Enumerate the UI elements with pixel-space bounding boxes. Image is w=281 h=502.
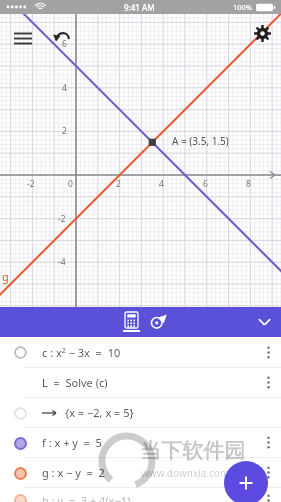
staticText: 2	[62, 125, 67, 137]
button[interactable]: More options	[255, 488, 281, 502]
staticText: 2	[116, 178, 121, 190]
button[interactable]: Calculator	[118, 307, 144, 337]
button[interactable]: Geometry	[145, 307, 171, 337]
staticText: 6	[203, 178, 208, 190]
staticText: 4	[62, 82, 67, 94]
button[interactable]: f : x + y = 5	[0, 428, 281, 457]
staticText: A = (3.5, 1.5)	[172, 134, 229, 148]
staticText: L = Solve (c)	[42, 375, 108, 390]
staticText: 4	[159, 178, 164, 190]
staticText: 当下软件园	[140, 438, 245, 464]
button[interactable]: g : x − y = 2	[0, 458, 281, 487]
button[interactable]: More options	[255, 428, 281, 457]
button[interactable]: Collapse	[247, 307, 281, 337]
staticText: 8	[246, 178, 251, 190]
button[interactable]: L = Solve (c)	[0, 368, 281, 397]
staticText: 6	[62, 38, 67, 50]
button[interactable]: Menu	[8, 23, 38, 53]
button[interactable]: Add	[224, 461, 268, 502]
staticText: {x = −2, x = 5}	[65, 405, 134, 420]
staticText: f : x + y = 5	[42, 435, 102, 450]
staticText: -2	[58, 213, 66, 225]
button[interactable]: h : y = 3 + 4(x−1)	[0, 488, 281, 502]
staticText: g : x − y = 2	[42, 465, 105, 480]
staticText: c : x2 − 3x = 10	[42, 345, 121, 360]
button[interactable]: {x = −2, x = 5}	[0, 398, 281, 427]
staticText: g	[2, 269, 9, 284]
staticText: -4	[58, 256, 66, 268]
button[interactable]: More options	[255, 337, 281, 367]
button[interactable]: More options	[255, 458, 281, 487]
staticText: 0	[68, 178, 73, 190]
button[interactable]: c : x2 − 3x = 10	[0, 337, 281, 367]
staticText: www.downxia.com	[141, 466, 230, 480]
staticText: -2	[27, 178, 35, 190]
staticText: 100%	[233, 2, 253, 12]
button[interactable]: Settings	[249, 20, 275, 46]
button[interactable]: More options	[255, 368, 281, 397]
staticText: h : y = 3 + 4(x−1)	[42, 493, 131, 502]
staticText: 9:41 AM	[124, 2, 155, 13]
button[interactable]: Undo	[48, 23, 76, 51]
